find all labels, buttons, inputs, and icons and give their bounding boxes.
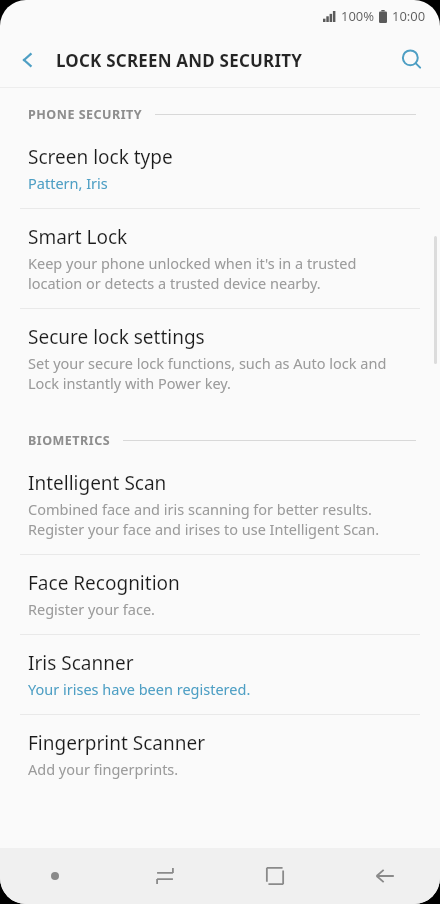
button[interactable]: Recent apps <box>110 848 220 904</box>
staticText: Intelligent Scan <box>28 470 167 496</box>
staticText: Register your face. <box>28 599 156 619</box>
button[interactable]: Back <box>330 848 440 904</box>
button[interactable]: Intelligent Scan <box>0 455 440 554</box>
staticText: Set your secure lock functions, such as … <box>28 353 414 393</box>
staticText: Secure lock settings <box>28 324 205 350</box>
staticText: BIOMETRICS <box>28 432 111 449</box>
staticText: Add your fingerprints. <box>28 759 179 779</box>
staticText: Combined face and iris scanning for bett… <box>28 499 414 539</box>
button[interactable]: Face Recognition <box>0 555 440 634</box>
button[interactable]: Home <box>220 848 330 904</box>
staticText: Your irises have been registered. <box>28 679 251 699</box>
staticText: Keep your phone unlocked when it's in a … <box>28 253 414 293</box>
staticText: PHONE SECURITY <box>28 106 143 123</box>
button[interactable]: Search <box>384 32 440 88</box>
staticText: LOCK SCREEN AND SECURITY <box>56 49 384 72</box>
staticText: Smart Lock <box>28 224 128 250</box>
button[interactable]: Fingerprint Scanner <box>0 715 440 794</box>
staticText: 10:00 <box>392 7 426 25</box>
staticText: 100% <box>341 7 375 25</box>
staticText: Screen lock type <box>28 144 173 170</box>
button[interactable]: Screen lock type <box>0 129 440 208</box>
button[interactable]: Smart Lock <box>0 209 440 308</box>
staticText: Fingerprint Scanner <box>28 730 205 756</box>
staticText: Pattern, Iris <box>28 173 108 193</box>
staticText: Iris Scanner <box>28 650 134 676</box>
staticText: Face Recognition <box>28 570 180 596</box>
button[interactable]: Back <box>0 32 56 88</box>
button[interactable]: Iris Scanner <box>0 635 440 714</box>
button[interactable]: Secure lock settings <box>0 309 440 408</box>
